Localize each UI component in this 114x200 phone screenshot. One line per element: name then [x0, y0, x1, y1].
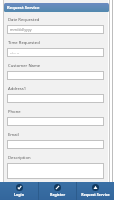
staticText: Phone	[8, 109, 21, 115]
staticText: Request Service	[7, 5, 40, 11]
button[interactable]	[7, 71, 104, 80]
other: Register	[54, 184, 61, 191]
staticText: Time Requested	[8, 40, 40, 46]
staticText: Request Service	[81, 192, 110, 197]
staticText: Register	[50, 192, 65, 197]
staticText: Customer Name	[8, 63, 41, 69]
staticText: Address1	[8, 86, 27, 92]
button[interactable]	[7, 140, 104, 149]
button[interactable]	[7, 117, 104, 126]
button[interactable]: Request Service	[77, 182, 114, 200]
other: Login	[16, 184, 23, 191]
staticText: --:-- --	[10, 50, 20, 55]
button[interactable]: Request Service	[4, 3, 109, 12]
staticText: Date Requested	[8, 17, 40, 23]
button[interactable]	[7, 94, 104, 103]
button[interactable]: --:-- --	[7, 48, 104, 57]
staticText: Email	[8, 132, 19, 138]
staticText: mm/dd/yyyy	[10, 27, 32, 32]
staticText: Description	[8, 155, 31, 161]
other: Request Service	[92, 184, 99, 191]
button[interactable]: mm/dd/yyyy	[7, 25, 104, 34]
button[interactable]	[7, 163, 104, 179]
staticText: Login	[14, 192, 24, 197]
button[interactable]: Register	[39, 182, 76, 200]
button[interactable]: Login	[0, 182, 38, 200]
